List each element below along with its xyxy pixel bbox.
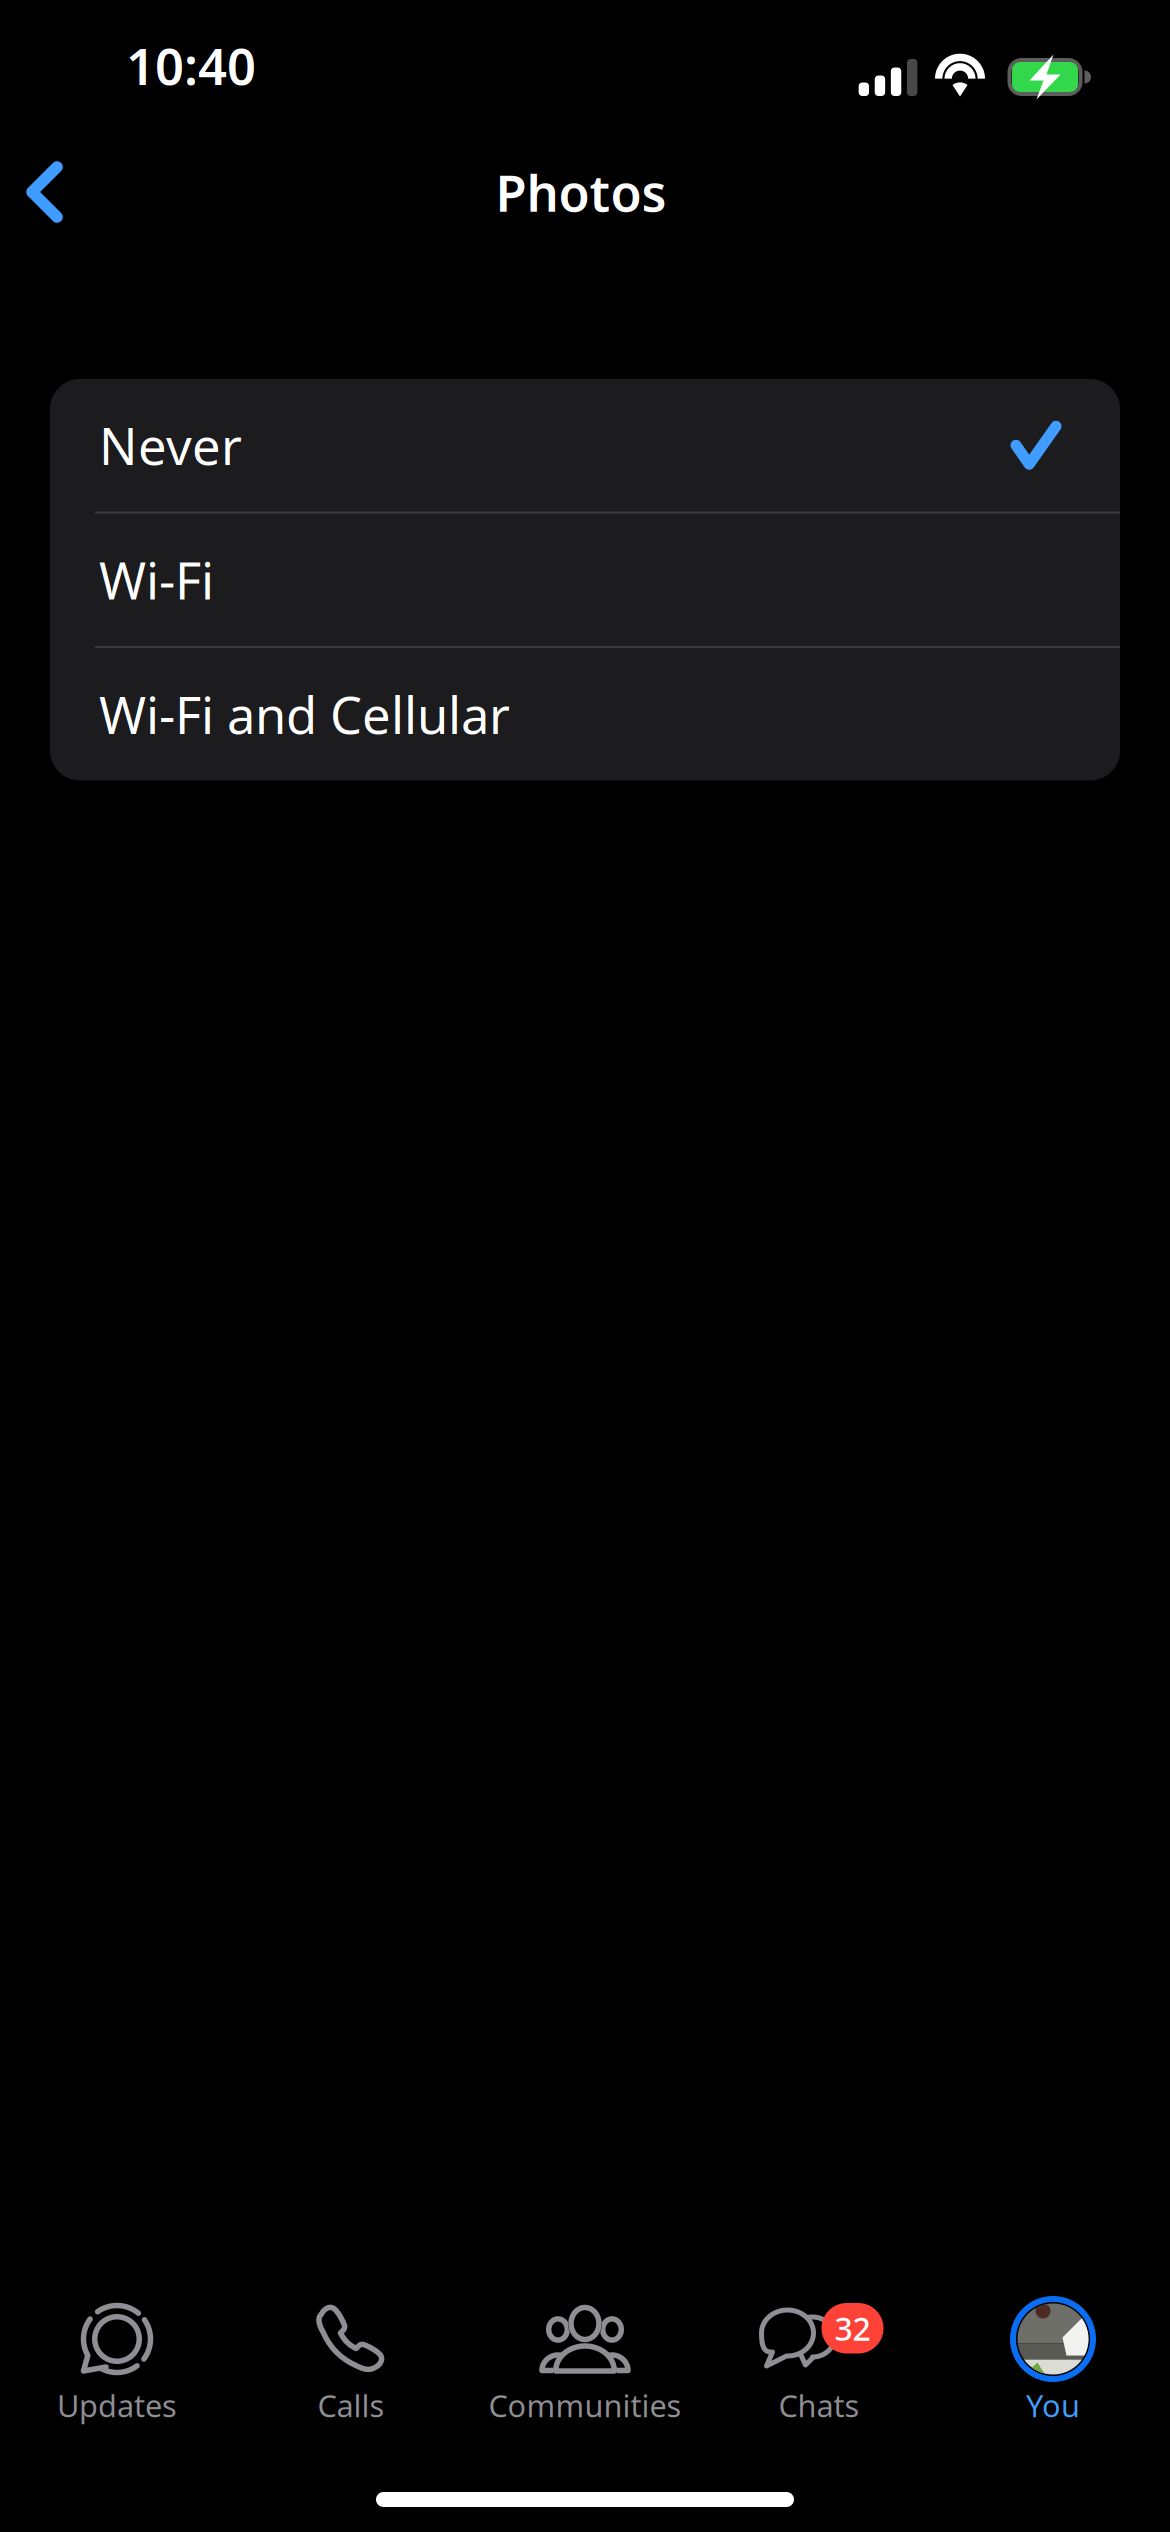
button[interactable]: 32 [702,2303,936,2454]
button[interactable]: Calls [234,2303,468,2454]
button[interactable]: Updates [0,2303,234,2454]
button[interactable]: Back [0,142,97,242]
staticText: Chats [778,2385,859,2426]
button[interactable]: Wi-Fi and Cellular [50,648,1120,780]
staticText: Photos [495,158,666,226]
staticText: 10:40 [126,32,256,99]
button[interactable]: Communities [468,2303,702,2454]
button[interactable]: Never [50,379,1120,511]
staticText: Wi-Fi [99,546,214,613]
staticText: 32 [834,2307,870,2349]
staticText: Communities [488,2385,681,2426]
staticText: You [1026,2385,1080,2426]
staticText: Wi-Fi and Cellular [99,681,510,748]
staticText: Updates [57,2385,177,2426]
button[interactable]: You [936,2303,1170,2454]
staticText: Never [99,412,242,479]
staticText: Calls [317,2385,384,2426]
button[interactable]: Wi-Fi [50,513,1120,646]
